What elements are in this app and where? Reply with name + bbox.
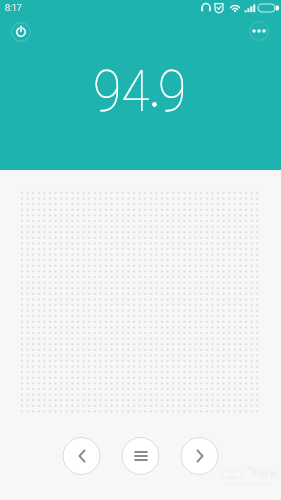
button[interactable]: More options [246,18,272,44]
button[interactable]: Next station [180,437,219,475]
button[interactable]: Station list [121,437,160,475]
button[interactable]: Power [8,19,34,45]
staticText: 94 [93,57,150,125]
staticText: 8:17 [5,3,22,14]
staticText: 9 [158,57,186,125]
button[interactable]: Previous station [62,437,101,475]
